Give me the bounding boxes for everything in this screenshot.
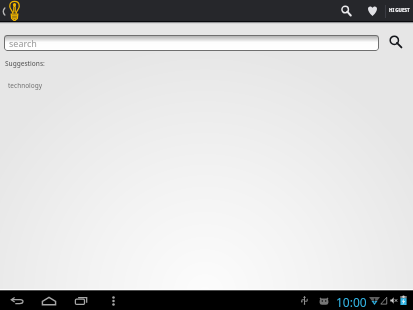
staticText: Suggestions:	[5, 59, 45, 68]
button[interactable]: Recent apps	[68, 291, 94, 310]
button[interactable]: Back	[4, 291, 30, 310]
button[interactable]: Search	[337, 0, 356, 21]
button[interactable]: More options	[104, 291, 122, 310]
button[interactable]: Search	[385, 34, 406, 50]
staticText: search	[9, 37, 37, 49]
staticText: HI GUEST	[389, 7, 410, 13]
button[interactable]: technology	[0, 81, 43, 90]
button[interactable]: search	[4, 35, 379, 51]
button[interactable]: Home	[36, 291, 62, 310]
button[interactable]: HI GUEST	[388, 0, 411, 20]
button[interactable]: Home	[9, 0, 21, 21]
staticText: 10:00	[336, 294, 367, 310]
button[interactable]: Favorites	[364, 0, 381, 21]
button[interactable]: Status	[0, 291, 413, 310]
